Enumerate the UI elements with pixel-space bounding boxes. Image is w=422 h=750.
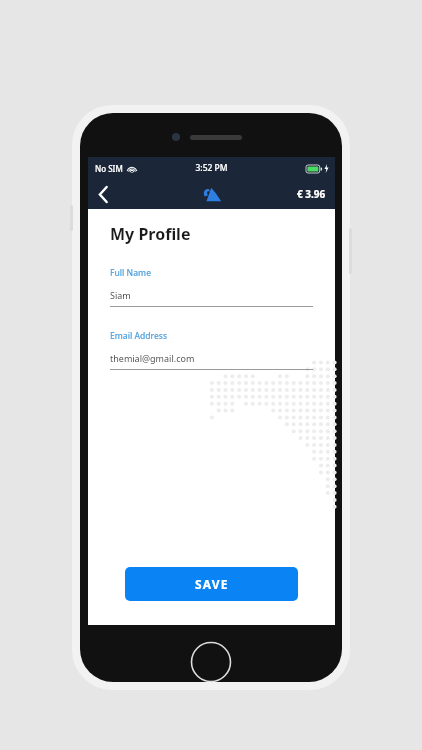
staticText: No SIM: [95, 163, 123, 174]
staticText: My Profile: [110, 223, 191, 245]
button[interactable]: € 3.96: [297, 187, 326, 201]
staticText: Siam: [110, 289, 131, 301]
staticText: themial@gmail.com: [110, 352, 195, 364]
staticText: Full Name: [110, 267, 152, 279]
staticText: SAVE: [195, 576, 229, 592]
staticText: 3:52 PM: [195, 162, 228, 174]
button[interactable]: SAVE: [125, 567, 298, 601]
button[interactable]: App logo: [197, 179, 227, 209]
staticText: Email Address: [110, 330, 168, 342]
button[interactable]: Back: [88, 179, 118, 209]
